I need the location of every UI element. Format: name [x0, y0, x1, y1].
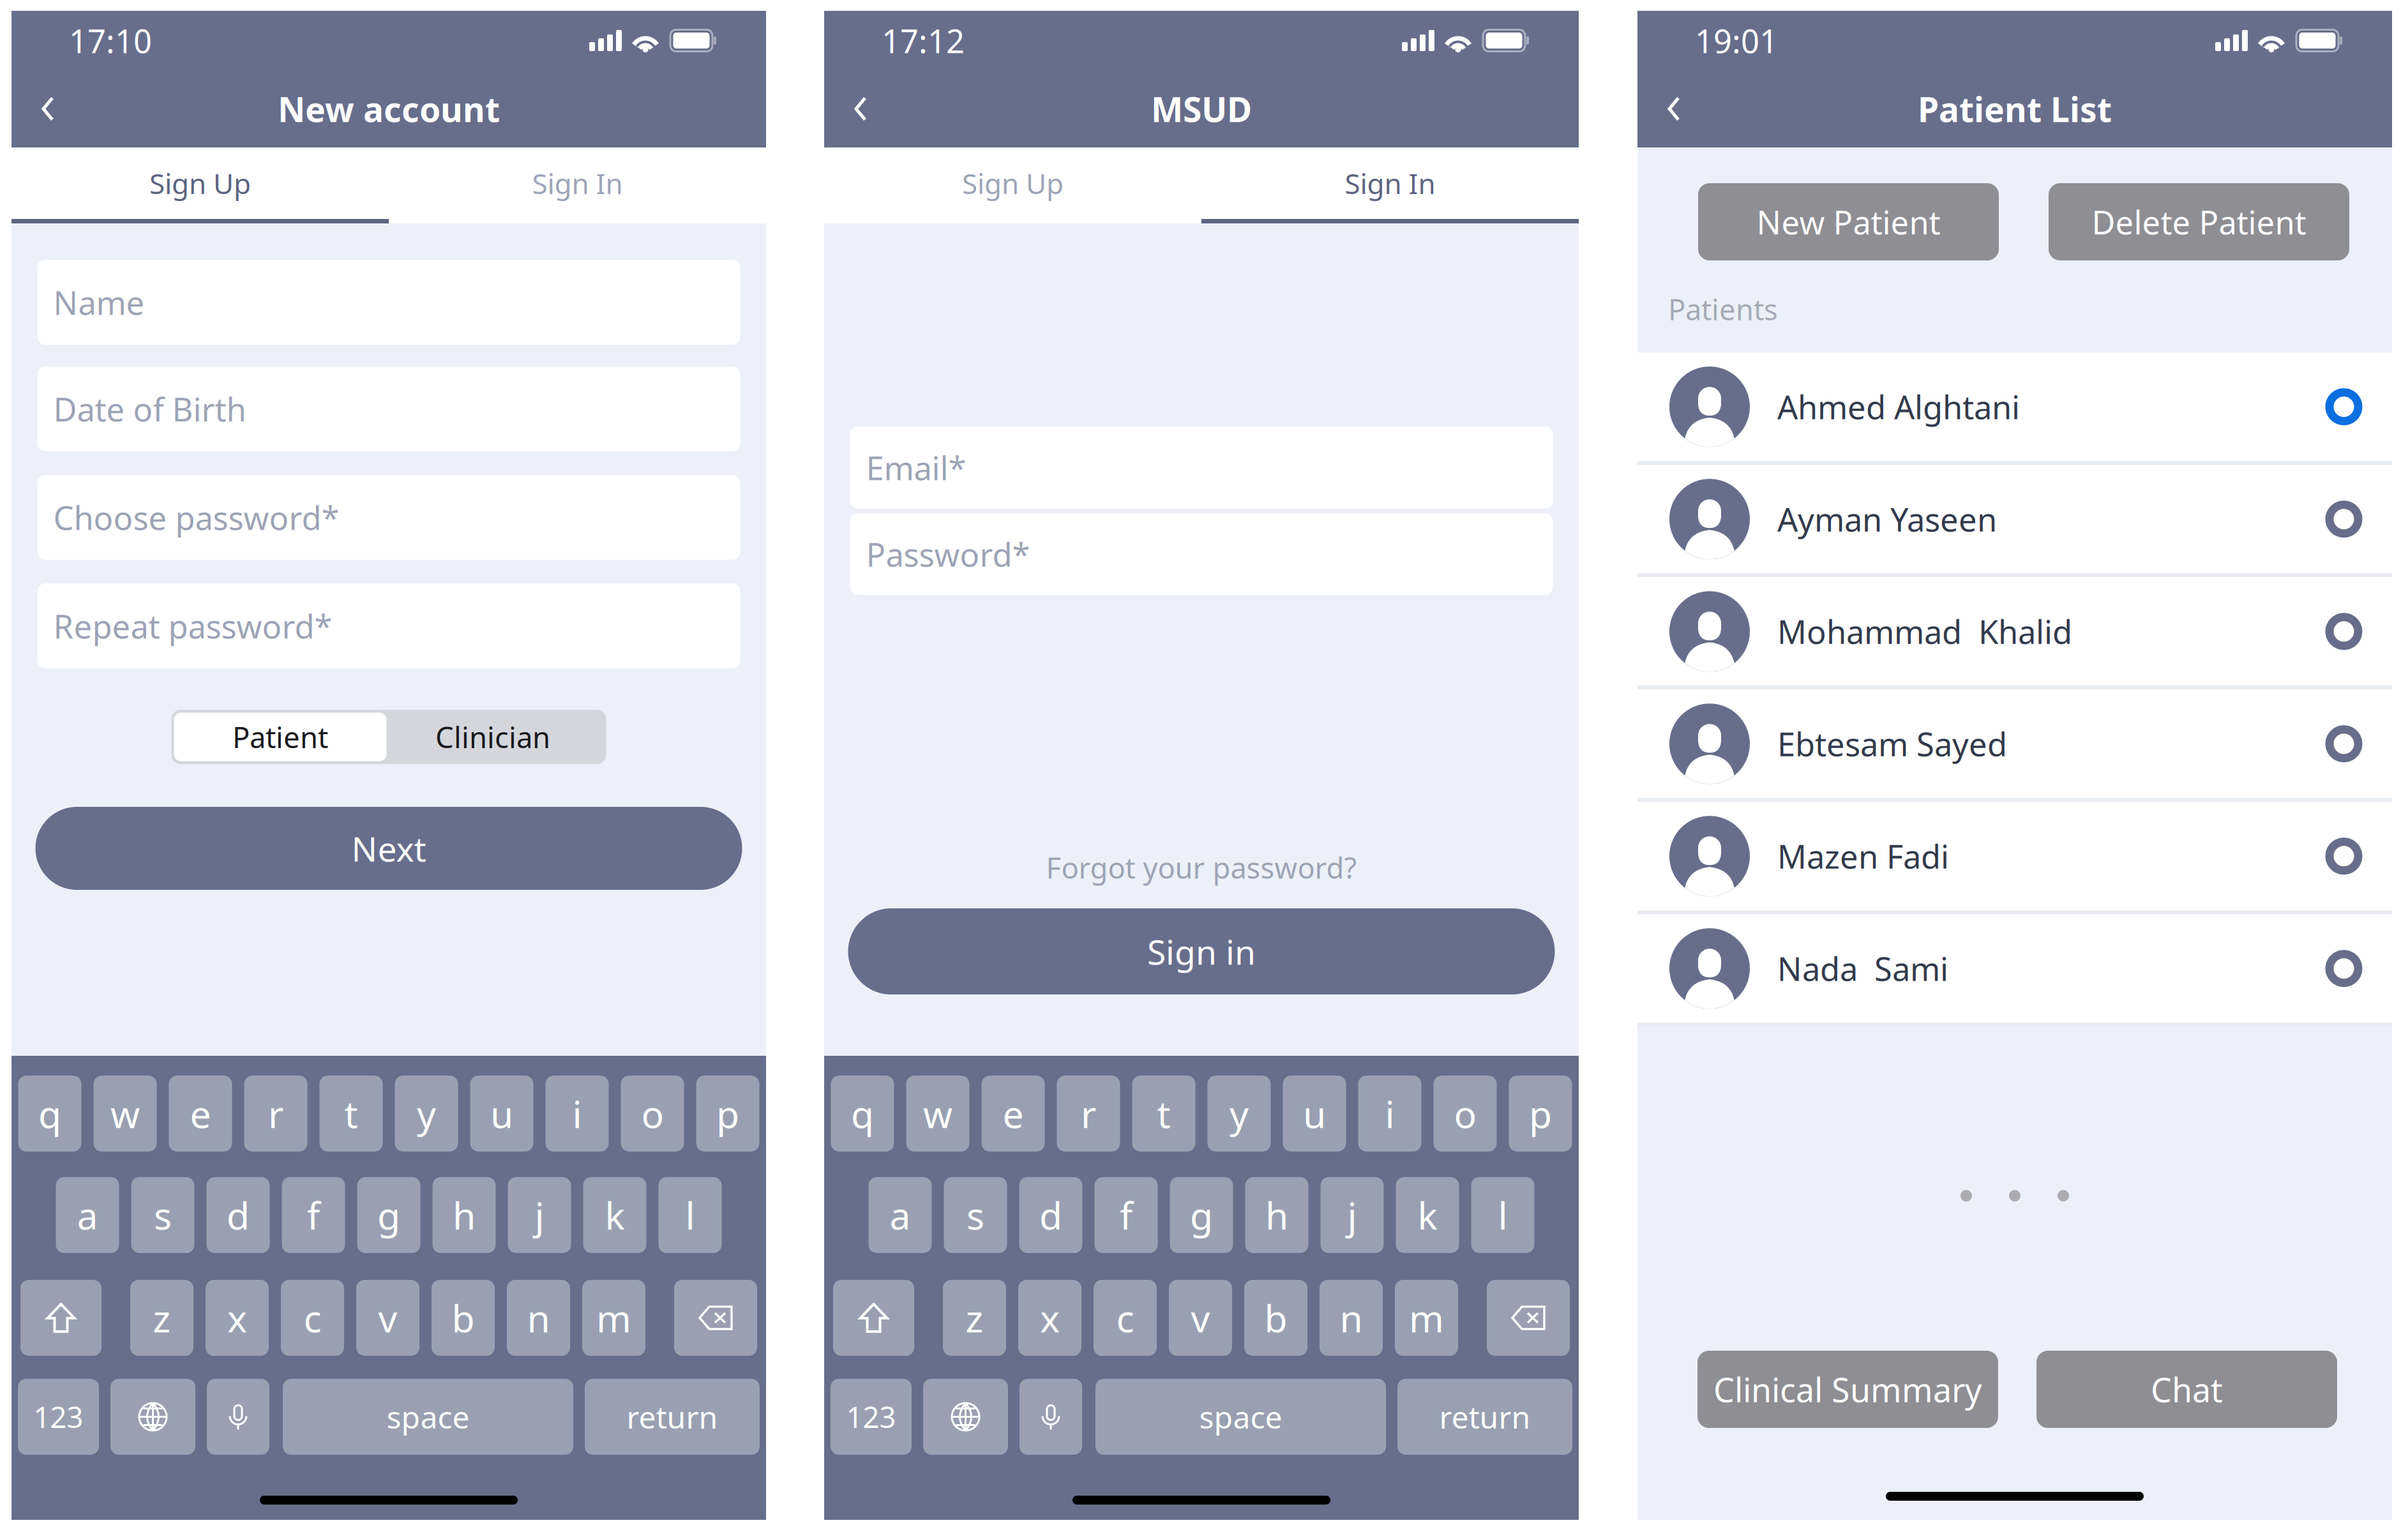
button[interactable]: Password*: [850, 513, 1553, 595]
button[interactable]: w: [94, 1076, 157, 1152]
button[interactable]: Next keyboard: [110, 1379, 195, 1455]
button[interactable]: Next: [35, 807, 742, 890]
button[interactable]: x: [206, 1280, 269, 1356]
button[interactable]: v: [356, 1280, 419, 1356]
button[interactable]: b: [432, 1280, 495, 1356]
button[interactable]: Ebtesam Sayed: [1637, 690, 2392, 798]
button[interactable]: Back: [11, 70, 80, 147]
staticText: New Patient: [1757, 200, 1940, 243]
button[interactable]: Ahmed Alghtani: [1637, 352, 2392, 461]
button[interactable]: g: [357, 1177, 420, 1253]
button[interactable]: n: [507, 1280, 570, 1356]
button[interactable]: m: [582, 1280, 645, 1356]
button[interactable]: Sign Up: [11, 147, 389, 223]
button[interactable]: f: [282, 1177, 345, 1253]
button[interactable]: d: [1019, 1177, 1082, 1253]
button[interactable]: Clinical Summary: [1697, 1351, 1998, 1428]
button[interactable]: p: [1509, 1076, 1572, 1152]
button[interactable]: Back: [824, 70, 893, 147]
button[interactable]: e: [982, 1076, 1045, 1152]
button[interactable]: y: [1208, 1076, 1271, 1152]
button[interactable]: space: [283, 1379, 573, 1455]
button[interactable]: c: [281, 1280, 344, 1356]
button[interactable]: Delete Patient: [2049, 183, 2349, 260]
button[interactable]: u: [1283, 1076, 1346, 1152]
button[interactable]: Mohammad Khalid: [1637, 577, 2392, 686]
button[interactable]: q: [831, 1076, 894, 1152]
button[interactable]: space: [1095, 1379, 1386, 1455]
button[interactable]: Nada Sami: [1637, 914, 2392, 1023]
button[interactable]: z: [130, 1280, 193, 1356]
button[interactable]: j: [1321, 1177, 1384, 1253]
button[interactable]: i: [546, 1076, 609, 1152]
staticText: Password*: [866, 533, 1030, 576]
button[interactable]: j: [508, 1177, 571, 1253]
button[interactable]: h: [433, 1177, 496, 1253]
staticText: Patient List: [1918, 86, 2112, 131]
button[interactable]: 123: [831, 1379, 912, 1455]
button[interactable]: b: [1244, 1280, 1307, 1356]
button[interactable]: Mazen Fadi: [1637, 802, 2392, 910]
button[interactable]: q: [18, 1076, 81, 1152]
button[interactable]: Chat: [2036, 1351, 2337, 1428]
button[interactable]: Patient: [174, 713, 387, 761]
button[interactable]: f: [1095, 1177, 1158, 1253]
button[interactable]: Choose password*: [37, 475, 740, 560]
button[interactable]: 123: [18, 1379, 99, 1455]
button[interactable]: Dictate: [207, 1379, 269, 1455]
button[interactable]: c: [1094, 1280, 1157, 1356]
button[interactable]: r: [1057, 1076, 1120, 1152]
button[interactable]: m: [1395, 1280, 1458, 1356]
button[interactable]: Date of Birth: [37, 366, 740, 451]
button[interactable]: a: [56, 1177, 119, 1253]
button[interactable]: Shift: [20, 1280, 102, 1356]
button[interactable]: s: [944, 1177, 1007, 1253]
button[interactable]: Sign In: [1201, 147, 1579, 223]
staticText: s: [967, 1190, 984, 1240]
button[interactable]: Sign Up: [824, 147, 1201, 223]
button[interactable]: i: [1358, 1076, 1421, 1152]
button[interactable]: Ayman Yaseen: [1637, 465, 2392, 573]
button[interactable]: k: [1396, 1177, 1459, 1253]
button[interactable]: Name: [37, 260, 740, 345]
button[interactable]: Repeat password*: [37, 583, 740, 668]
button[interactable]: t: [320, 1076, 383, 1152]
button[interactable]: Back: [1637, 70, 1706, 147]
staticText: Delete Patient: [2092, 200, 2306, 243]
button[interactable]: return: [585, 1379, 760, 1455]
button[interactable]: k: [583, 1177, 646, 1253]
button[interactable]: Sign In: [389, 147, 766, 223]
button[interactable]: Email*: [850, 426, 1553, 509]
button[interactable]: r: [244, 1076, 307, 1152]
button[interactable]: y: [395, 1076, 458, 1152]
button[interactable]: d: [207, 1177, 270, 1253]
button[interactable]: Next keyboard: [923, 1379, 1008, 1455]
button[interactable]: New Patient: [1698, 183, 1999, 260]
button[interactable]: Dictate: [1020, 1379, 1082, 1455]
button[interactable]: Forgot your password?: [1046, 841, 1357, 885]
button[interactable]: u: [470, 1076, 533, 1152]
button[interactable]: p: [696, 1076, 759, 1152]
button[interactable]: x: [1018, 1280, 1081, 1356]
button[interactable]: Sign in: [848, 908, 1555, 995]
button[interactable]: e: [169, 1076, 232, 1152]
button[interactable]: Shift: [833, 1280, 914, 1356]
staticText: MSUD: [1151, 86, 1252, 131]
button[interactable]: Delete: [674, 1280, 757, 1356]
button[interactable]: o: [621, 1076, 684, 1152]
button[interactable]: Delete: [1487, 1280, 1570, 1356]
button[interactable]: o: [1434, 1076, 1497, 1152]
button[interactable]: return: [1397, 1379, 1572, 1455]
button[interactable]: Clinician: [387, 713, 599, 761]
button[interactable]: w: [906, 1076, 969, 1152]
button[interactable]: h: [1245, 1177, 1308, 1253]
button[interactable]: s: [131, 1177, 194, 1253]
button[interactable]: v: [1169, 1280, 1232, 1356]
button[interactable]: l: [658, 1177, 722, 1253]
button[interactable]: g: [1170, 1177, 1233, 1253]
button[interactable]: a: [869, 1177, 932, 1253]
button[interactable]: z: [943, 1280, 1006, 1356]
button[interactable]: l: [1471, 1177, 1534, 1253]
button[interactable]: t: [1132, 1076, 1195, 1152]
button[interactable]: n: [1320, 1280, 1383, 1356]
